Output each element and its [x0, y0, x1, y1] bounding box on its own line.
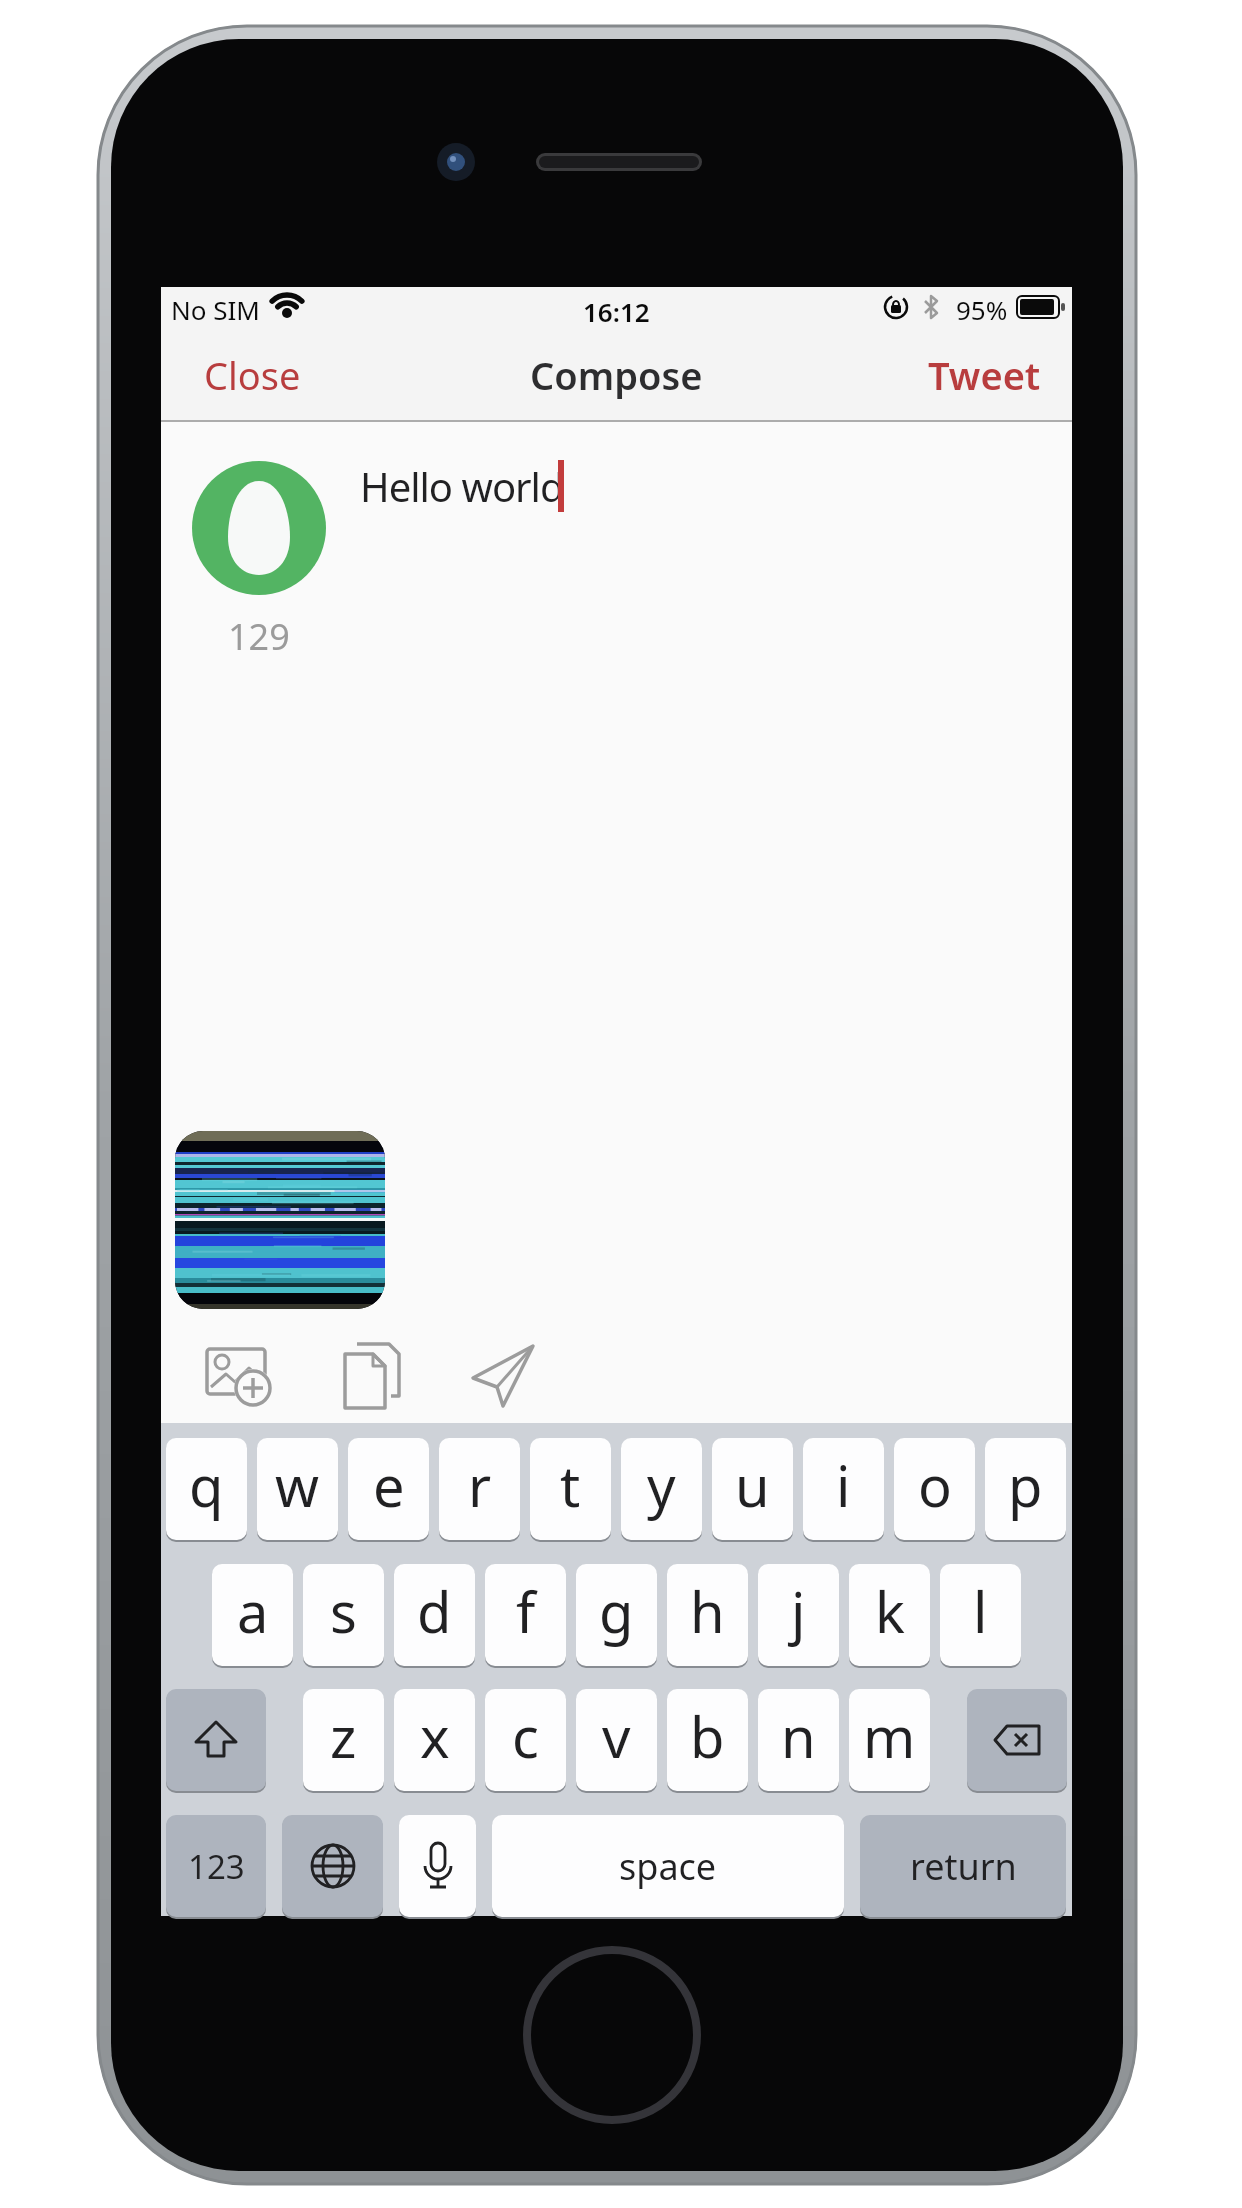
- button[interactable]: n: [758, 1689, 839, 1791]
- staticText: r: [468, 1447, 492, 1523]
- staticText: g: [599, 1573, 634, 1649]
- button[interactable]: e: [348, 1438, 429, 1540]
- button[interactable]: [205, 1347, 285, 1411]
- staticText: 16:12: [583, 294, 650, 324]
- button[interactable]: i: [803, 1438, 884, 1540]
- button[interactable]: j: [758, 1564, 839, 1666]
- button[interactable]: y: [621, 1438, 702, 1540]
- staticText: s: [330, 1573, 357, 1649]
- staticText: d: [417, 1573, 452, 1649]
- staticText: p: [1008, 1447, 1043, 1523]
- staticText: a: [237, 1573, 269, 1649]
- button[interactable]: [175, 1131, 385, 1309]
- button[interactable]: u: [712, 1438, 793, 1540]
- button[interactable]: o: [894, 1438, 975, 1540]
- staticText: Tweet: [928, 349, 1041, 401]
- staticText: c: [512, 1698, 539, 1774]
- button[interactable]: b: [667, 1689, 748, 1791]
- staticText: v: [602, 1698, 631, 1774]
- staticText: y: [647, 1447, 676, 1523]
- staticText: e: [373, 1447, 405, 1523]
- button[interactable]: 123: [166, 1815, 266, 1917]
- staticText: Close: [204, 349, 301, 401]
- button[interactable]: space: [492, 1815, 844, 1917]
- staticText: space: [619, 1842, 717, 1891]
- staticText: w: [275, 1447, 320, 1523]
- button[interactable]: g: [576, 1564, 657, 1666]
- button[interactable]: [471, 1344, 537, 1408]
- button[interactable]: [399, 1815, 476, 1917]
- staticText: n: [781, 1698, 816, 1774]
- button[interactable]: Tweet: [921, 345, 1041, 405]
- button[interactable]: f: [485, 1564, 566, 1666]
- staticText: Compose: [530, 349, 703, 401]
- button[interactable]: x: [394, 1689, 475, 1791]
- staticText: m: [863, 1698, 916, 1774]
- staticText: 129: [228, 612, 290, 656]
- staticText: i: [836, 1447, 851, 1523]
- button[interactable]: [282, 1815, 383, 1917]
- staticText: h: [690, 1573, 725, 1649]
- staticText: No SIM: [171, 292, 260, 327]
- button[interactable]: l: [940, 1564, 1021, 1666]
- button[interactable]: [166, 1689, 266, 1791]
- button[interactable]: r: [439, 1438, 520, 1540]
- button[interactable]: d: [394, 1564, 475, 1666]
- button[interactable]: s: [303, 1564, 384, 1666]
- staticText: j: [791, 1573, 806, 1649]
- staticText: o: [918, 1447, 952, 1523]
- staticText: return: [910, 1842, 1017, 1891]
- button[interactable]: [967, 1689, 1067, 1791]
- button[interactable]: z: [303, 1689, 384, 1791]
- staticText: q: [189, 1447, 224, 1523]
- button[interactable]: h: [667, 1564, 748, 1666]
- staticText: k: [875, 1573, 905, 1649]
- button[interactable]: w: [257, 1438, 338, 1540]
- staticText: x: [420, 1698, 450, 1774]
- button[interactable]: Close: [204, 345, 319, 405]
- staticText: 123: [188, 1844, 245, 1889]
- button[interactable]: c: [485, 1689, 566, 1791]
- button[interactable]: q: [166, 1438, 247, 1540]
- button[interactable]: return: [860, 1815, 1066, 1917]
- staticText: b: [690, 1698, 725, 1774]
- button[interactable]: m: [849, 1689, 930, 1791]
- button[interactable]: p: [985, 1438, 1066, 1540]
- button[interactable]: k: [849, 1564, 930, 1666]
- staticText: f: [516, 1573, 536, 1649]
- staticText: u: [735, 1447, 770, 1523]
- staticText: t: [560, 1447, 581, 1523]
- button[interactable]: [341, 1344, 405, 1412]
- staticText: l: [973, 1573, 988, 1649]
- button[interactable]: v: [576, 1689, 657, 1791]
- staticText: z: [330, 1698, 357, 1774]
- button[interactable]: a: [212, 1564, 293, 1666]
- staticText: Hello world: [360, 459, 564, 513]
- staticText: 95%: [956, 292, 1008, 327]
- button[interactable]: t: [530, 1438, 611, 1540]
